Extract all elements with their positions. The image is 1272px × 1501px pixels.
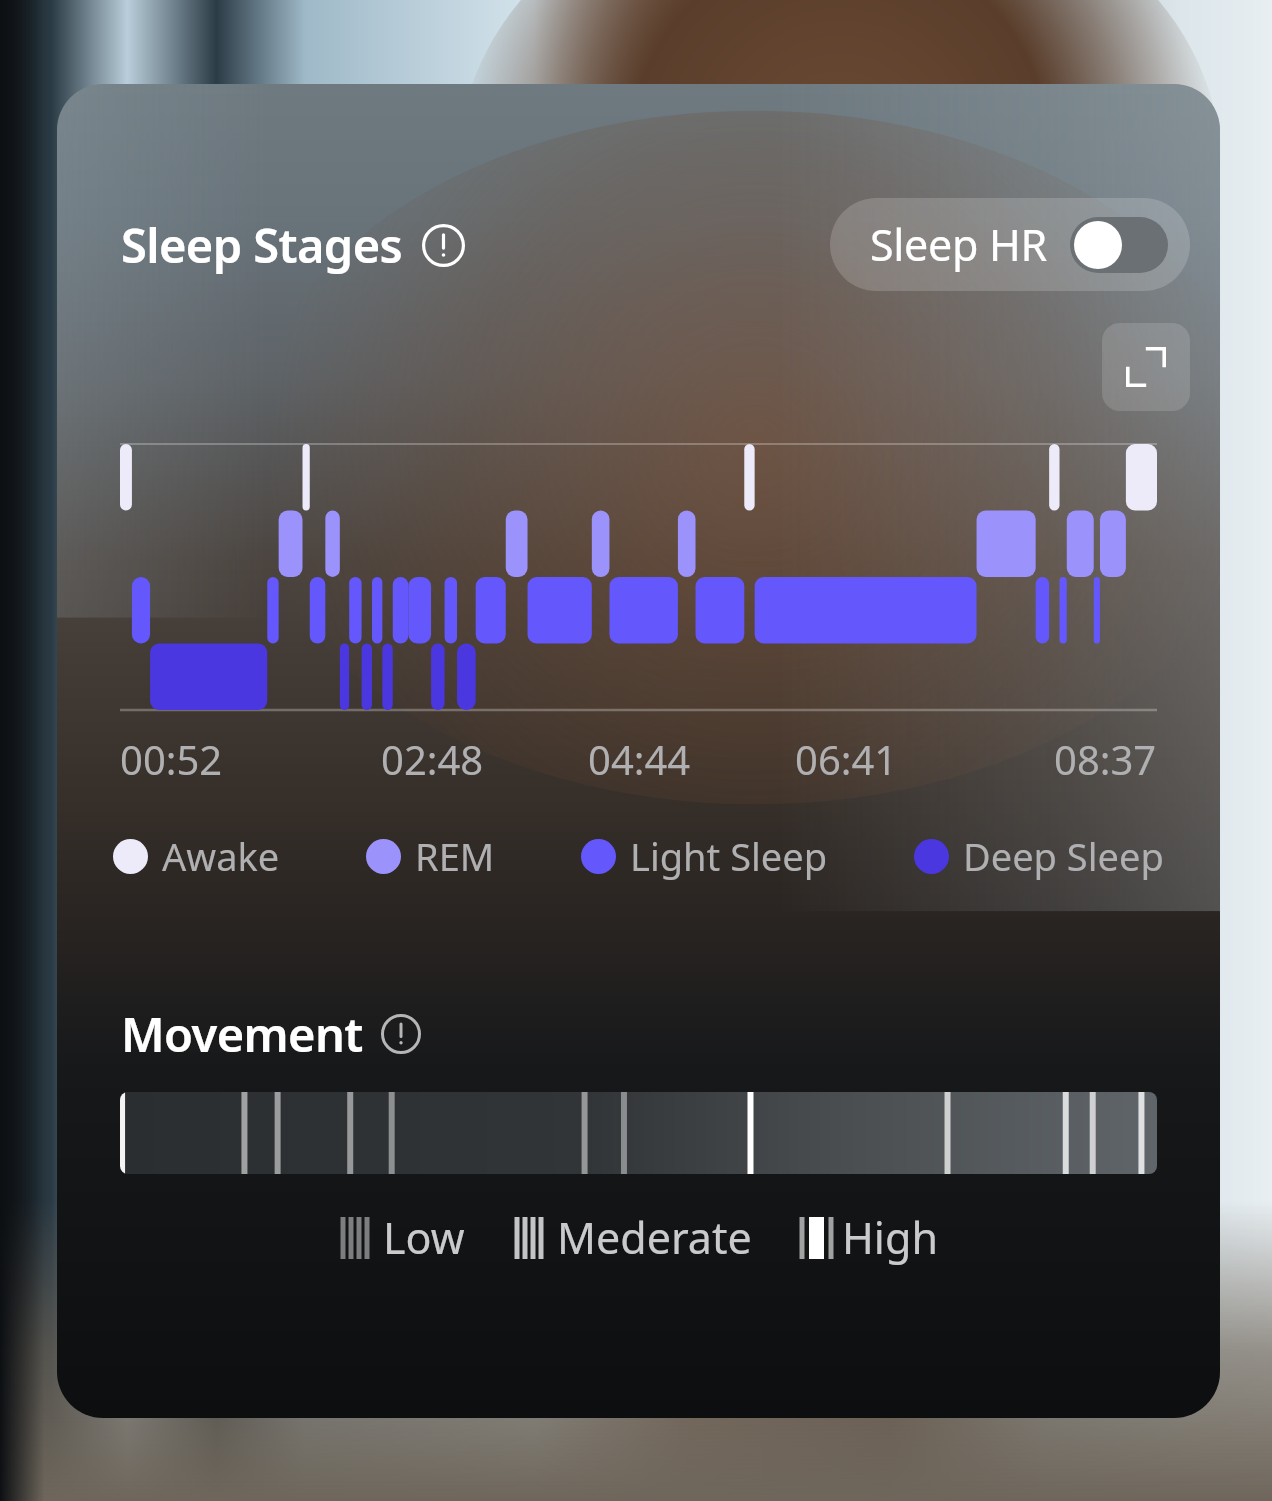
button[interactable]: Mederate xyxy=(513,1208,752,1267)
staticText: Sleep Stages xyxy=(121,213,403,277)
staticText: 02:48 xyxy=(381,732,484,786)
button[interactable]: Movement xyxy=(121,1002,421,1066)
button[interactable]: Deep Sleep xyxy=(914,830,1164,882)
button[interactable]: Expand chart xyxy=(1102,323,1190,411)
button[interactable]: Low xyxy=(339,1208,465,1267)
button[interactable]: Sleep Stages xyxy=(121,209,465,281)
other: Movement timeline xyxy=(120,1092,1157,1174)
staticText: Awake xyxy=(162,830,280,882)
staticText: REM xyxy=(415,830,495,882)
button[interactable]: High xyxy=(798,1208,938,1267)
staticText: Low xyxy=(383,1208,465,1267)
staticText: Movement xyxy=(121,1002,363,1066)
staticText: Sleep HR xyxy=(870,215,1048,274)
staticText: Light Sleep xyxy=(630,830,828,882)
staticText: 06:41 xyxy=(795,732,898,786)
staticText: Deep Sleep xyxy=(963,830,1164,882)
staticText: 08:37 xyxy=(1054,732,1157,786)
button[interactable]: REM xyxy=(366,830,495,882)
staticText: High xyxy=(842,1208,938,1267)
button[interactable]: Light Sleep xyxy=(581,830,828,882)
staticText: Mederate xyxy=(557,1208,752,1267)
staticText: 04:44 xyxy=(588,732,691,786)
staticText: 00:52 xyxy=(120,732,223,786)
button[interactable]: Awake xyxy=(113,830,280,882)
button[interactable]: Sleep HR xyxy=(830,198,1190,291)
